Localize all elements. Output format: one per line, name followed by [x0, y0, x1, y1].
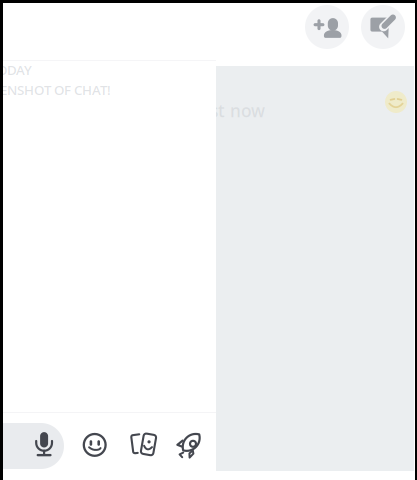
button[interactable]: Send — [166, 421, 210, 469]
staticText: just now — [194, 99, 265, 122]
button[interactable]: Voice message — [22, 421, 66, 469]
button[interactable]: Stickers — [122, 421, 166, 469]
button[interactable]: New chat — [360, 4, 406, 50]
staticText: TODAY — [0, 61, 32, 79]
button[interactable]: Add friend — [304, 4, 350, 50]
button[interactable]: Emoji — [73, 421, 117, 469]
staticText: SCREENSHOT OF CHAT! — [0, 81, 111, 99]
